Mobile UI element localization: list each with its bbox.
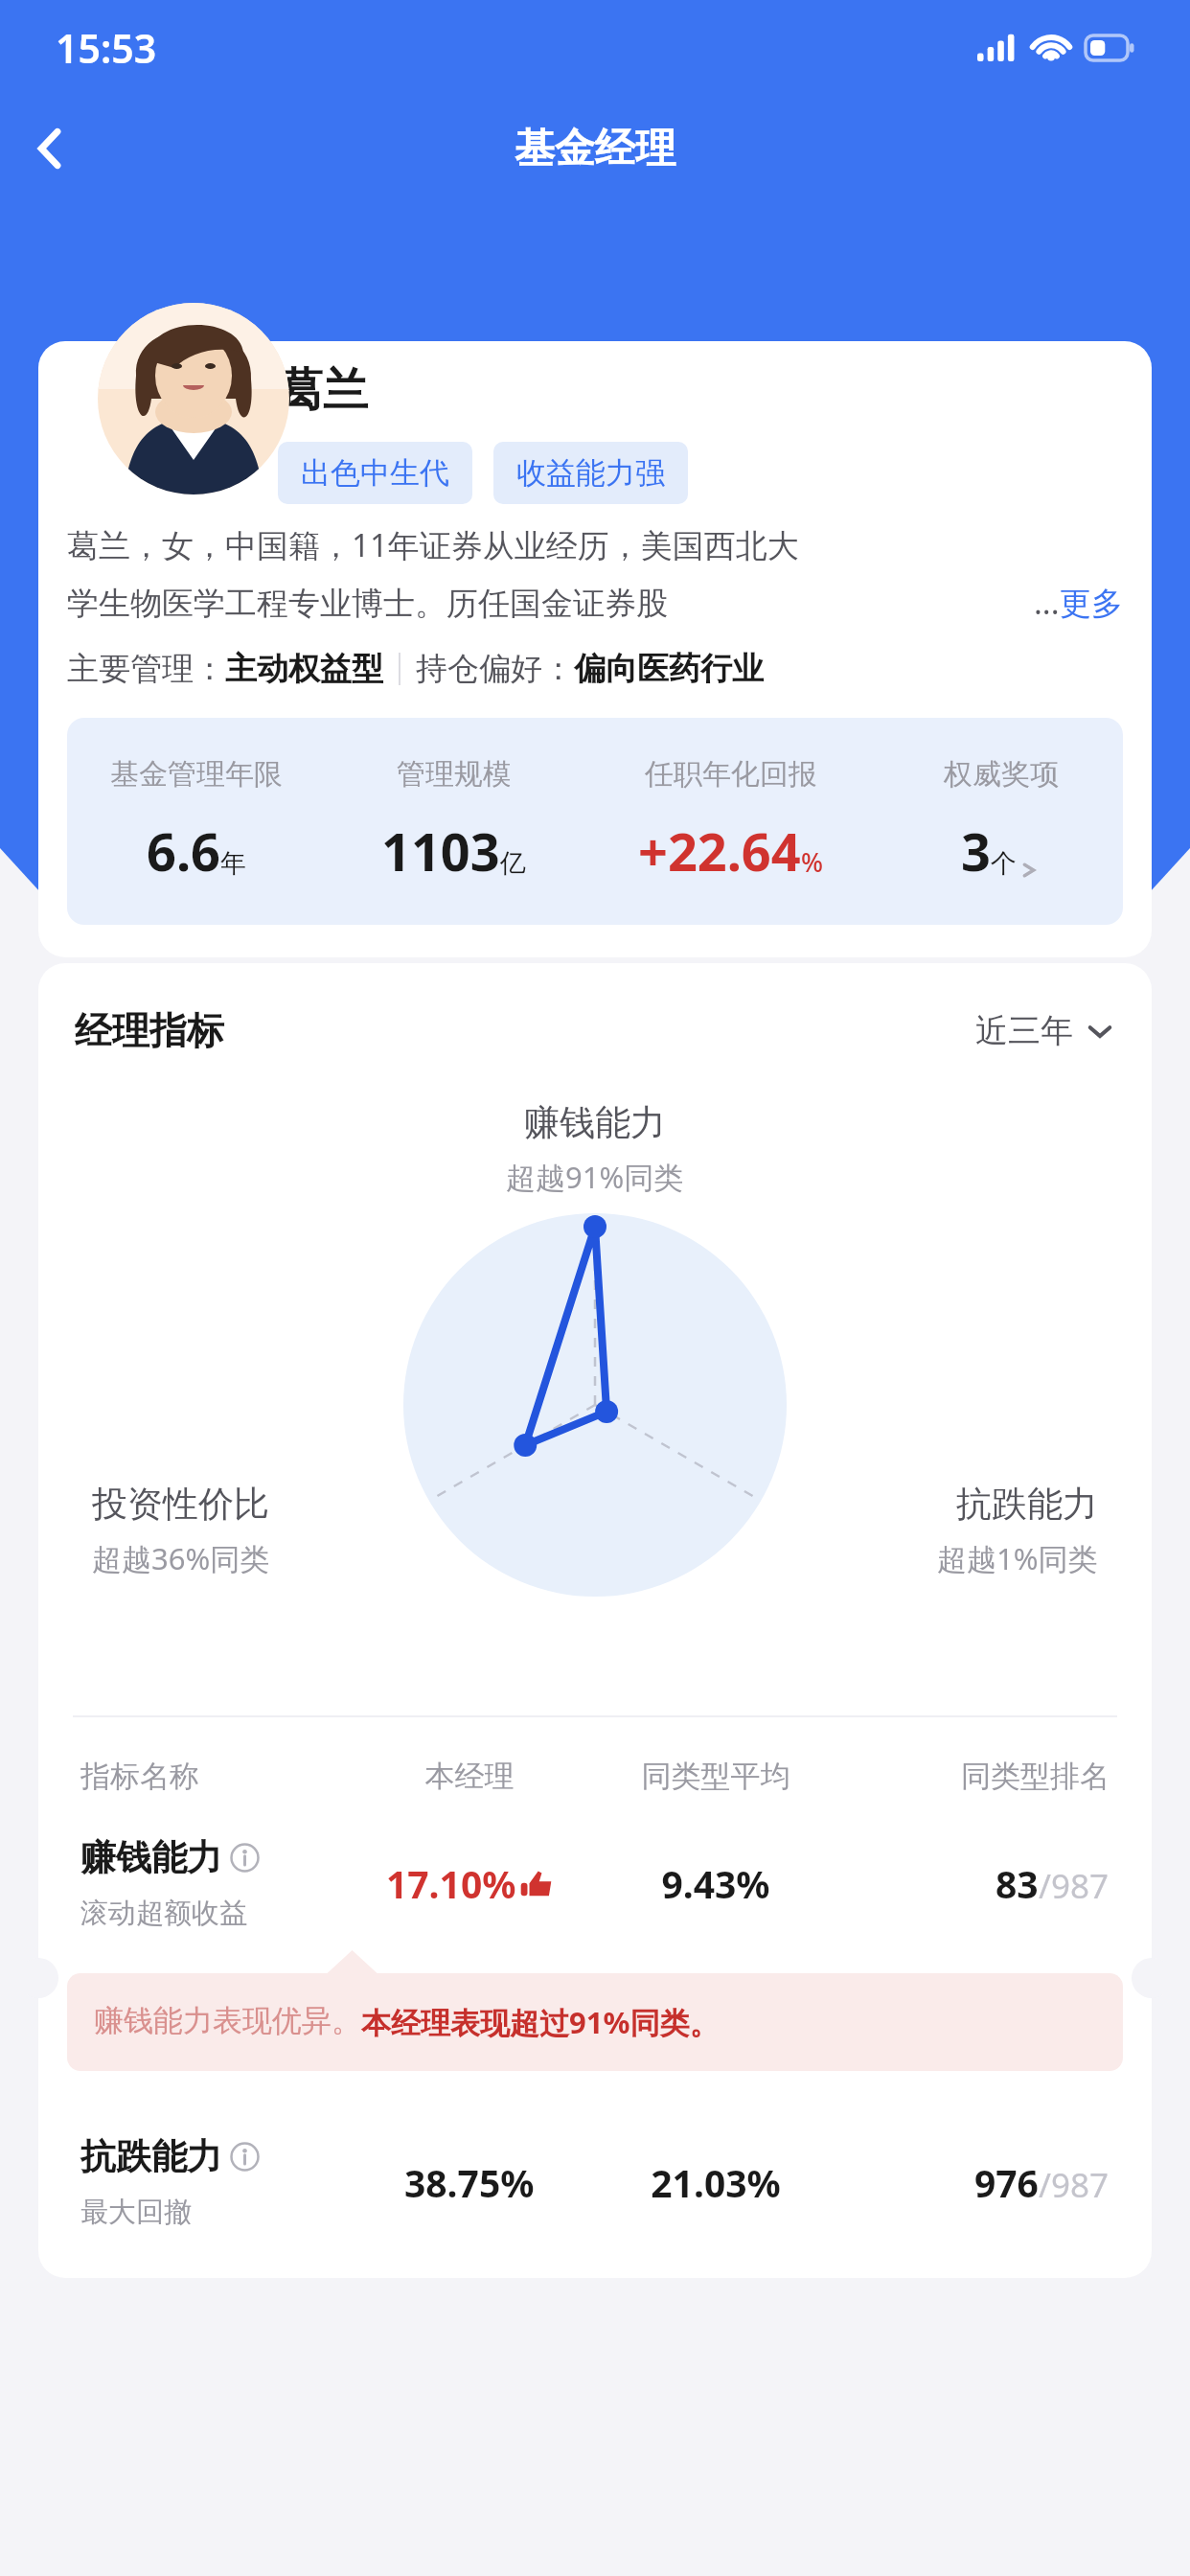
staticText: 本经理 [355,1758,584,1795]
staticText: 本经理表现超过91%同类。 [361,2002,720,2042]
staticText: 38.75% [404,2157,535,2208]
staticText: 抗跌能力 [956,1482,1098,1527]
staticText: 主要管理： [67,649,225,689]
staticText: +22.64 [638,816,801,886]
staticText: 更多 [1060,584,1123,624]
staticText: 21.03% [584,2157,847,2208]
staticText: 近三年 [975,1010,1073,1051]
staticText: 出色中生代 [301,454,449,492]
button[interactable]: 近三年 [975,1010,1115,1051]
button[interactable]: Back [0,99,100,198]
staticText: 同类型平均 [584,1758,847,1795]
staticText: 持仓偏好： [416,649,574,689]
staticText: ... [1034,581,1060,624]
staticText: 葛兰，女，中国籍，11年证券从业经历，美国西北大 学生物医学工程专业博士。历任国… [67,523,1123,624]
button[interactable]: 抗跌能力 [38,2134,1152,2230]
button[interactable]: 基金管理年限 [67,718,1123,925]
button[interactable]: 收益能力强 [493,442,688,504]
staticText: 收益能力强 [516,454,665,492]
staticText: 最大回撤 [80,2195,192,2230]
staticText: 经理指标 [75,1007,224,1054]
staticText: /987 [1039,2162,1110,2208]
staticText: 葛兰 [278,362,368,419]
staticText: 1103 [381,816,500,886]
staticText: 滚动超额收益 [80,1896,247,1931]
staticText: % [801,844,824,880]
staticText: 15:53 [56,21,157,75]
staticText: 指标名称 [80,1758,355,1795]
staticText: 基金管理年限 [110,756,283,793]
staticText: 赚钱能力 [524,1100,666,1145]
staticText: 83 [995,1858,1039,1909]
staticText: 管理规模 [397,756,512,793]
staticText: 同类型排名 [847,1758,1110,1795]
staticText: 抗跌能力 [80,2134,222,2179]
staticText: 权威奖项 [944,756,1059,793]
staticText: 任职年化回报 [645,756,817,793]
staticText: 主动权益型 [225,649,383,689]
staticText: 偏向医药行业 [574,649,764,689]
staticText: 9.43% [584,1858,847,1909]
staticText: 17.10% [386,1858,516,1909]
staticText: 个 [991,847,1017,880]
button[interactable]: 出色中生代 [278,442,472,504]
button[interactable]: ... [1034,581,1123,624]
staticText: 超越36%同类 [92,1538,270,1578]
staticText: 赚钱能力 [80,1835,222,1880]
staticText: 投资性价比 [92,1482,269,1527]
staticText: 赚钱能力表现优异。 [94,2002,361,2039]
staticText: 3 [961,816,991,886]
staticText: 超越1%同类 [937,1538,1098,1578]
staticText: 超越91%同类 [506,1157,684,1197]
button[interactable]: 赚钱能力 [38,1835,1152,1931]
staticText: 976 [974,2157,1039,2208]
staticText: 亿 [500,847,526,880]
staticText: 6.6 [147,816,220,886]
staticText: /987 [1039,1863,1110,1909]
staticText: 年 [220,847,246,880]
staticText: 基金经理 [515,124,675,174]
